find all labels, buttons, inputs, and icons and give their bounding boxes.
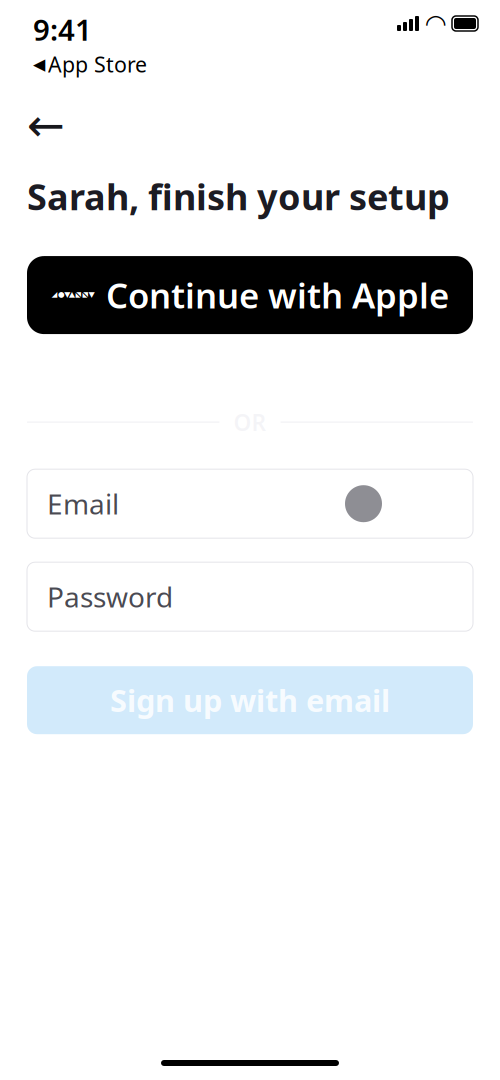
staticText: Password [47, 578, 173, 615]
staticText: OR [233, 407, 266, 437]
staticText: Email [47, 485, 119, 522]
button[interactable]: Back [0, 100, 90, 150]
staticText: Continue with Apple [106, 272, 449, 318]
staticText: ← [27, 100, 65, 151]
staticText: Sarah, finish your setup [27, 172, 450, 220]
button[interactable]: Email [27, 469, 473, 538]
staticText: App Store [48, 50, 147, 78]
button[interactable]:  [27, 256, 473, 334]
staticText: ◀ [33, 55, 45, 73]
staticText: Sign up with email [110, 680, 390, 720]
staticText: ◠ [426, 9, 445, 38]
button[interactable]: Password [27, 562, 473, 631]
staticText:  [51, 274, 96, 316]
staticText: 9:41 [33, 10, 92, 49]
button[interactable]: Sign up with email [27, 666, 473, 734]
